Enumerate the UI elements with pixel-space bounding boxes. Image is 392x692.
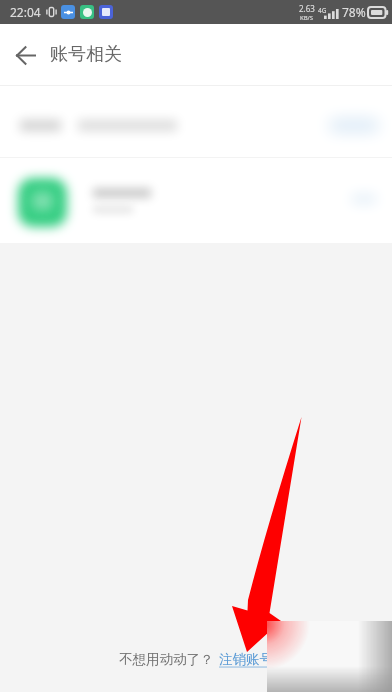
staticText: 账号相关 bbox=[50, 43, 122, 66]
staticText: 不想用动动了？ bbox=[119, 651, 214, 668]
staticText: 78% bbox=[342, 4, 366, 20]
staticText: KB/S bbox=[300, 14, 314, 22]
button[interactable] bbox=[0, 86, 392, 157]
button[interactable]: Back bbox=[0, 30, 50, 80]
staticText: 2.63 bbox=[299, 3, 315, 14]
button[interactable] bbox=[0, 158, 392, 243]
staticText: 22:04 bbox=[10, 4, 41, 20]
button[interactable]: 注销账号 bbox=[219, 651, 273, 668]
staticText: 4G bbox=[318, 6, 327, 15]
